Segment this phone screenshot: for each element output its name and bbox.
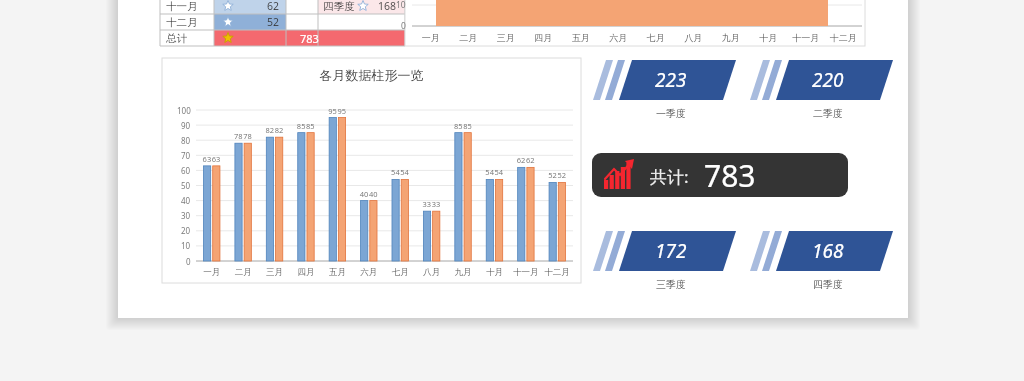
button[interactable]: Monthly data dashboard [0,0,1024,381]
